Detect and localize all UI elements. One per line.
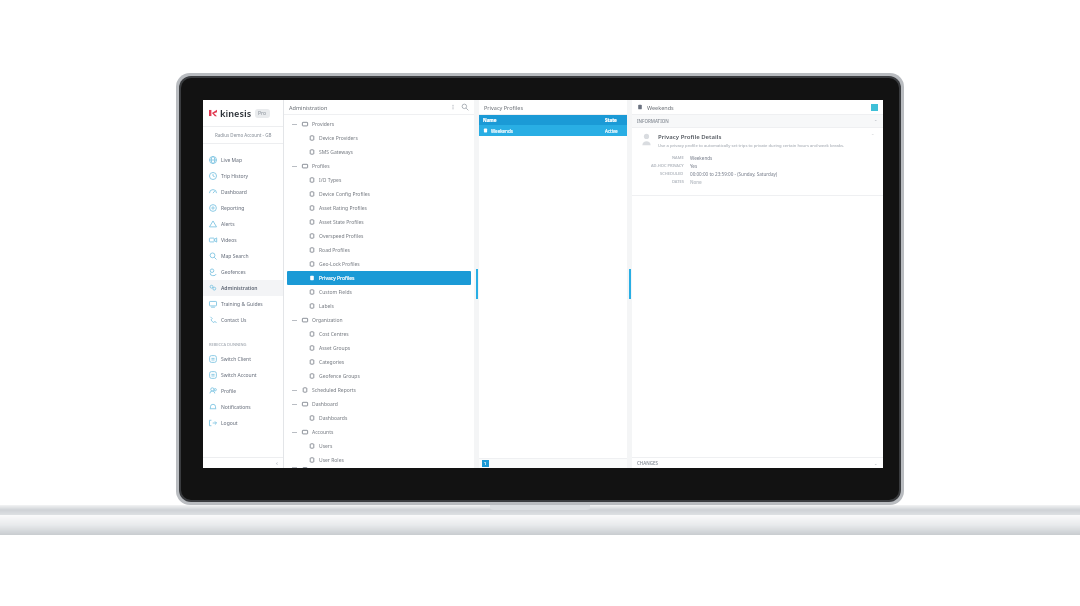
button[interactable]: Asset Groups xyxy=(287,341,471,355)
button[interactable]: Contact Us xyxy=(203,312,283,328)
button[interactable]: Trip History xyxy=(203,168,283,184)
button[interactable]: Switch Client xyxy=(203,351,283,367)
button[interactable]: Reporting xyxy=(203,200,283,216)
button[interactable]: Scheduled Reports xyxy=(287,383,471,397)
staticText: Dashboard xyxy=(312,401,338,408)
button[interactable]: Providers xyxy=(287,117,471,131)
button[interactable]: Dashboards xyxy=(287,411,471,425)
button[interactable]: SMS Gateways xyxy=(287,145,471,159)
staticText: Asset State Profiles xyxy=(319,219,364,226)
staticText: ⌃ xyxy=(871,133,875,138)
staticText: REBECCA DUNNING xyxy=(209,342,247,347)
staticText: kinesis xyxy=(220,107,252,119)
button[interactable]: Privacy Profiles xyxy=(287,271,471,285)
staticText: Asset Groups xyxy=(319,345,351,352)
button[interactable]: Map Search xyxy=(203,248,283,264)
staticText: None xyxy=(690,179,702,185)
staticText: Administration xyxy=(221,285,258,292)
button[interactable]: 1 xyxy=(482,460,489,467)
staticText: ⌃ xyxy=(874,119,878,124)
staticText: Training & Guides xyxy=(221,301,263,308)
staticText: Profiles xyxy=(312,163,330,170)
staticText: Labels xyxy=(319,303,335,310)
button[interactable]: I/O Types xyxy=(287,173,471,187)
staticText: Reporting xyxy=(221,205,245,212)
staticText: 00:00:00 to 23:59:00 - (Sunday, Saturday… xyxy=(690,171,778,177)
staticText: Road Profiles xyxy=(319,247,350,254)
staticText: Switch Account xyxy=(221,372,257,379)
button[interactable]: Geofence Groups xyxy=(287,369,471,383)
button[interactable]: Asset State Profiles xyxy=(287,215,471,229)
button[interactable]: Switch Account xyxy=(203,367,283,383)
staticText: Videos xyxy=(221,237,237,244)
staticText: Switch Client xyxy=(221,356,252,363)
staticText: Organization xyxy=(312,317,343,324)
staticText: SCHEDULED xyxy=(660,171,684,176)
button[interactable]: Training & Guides xyxy=(203,296,283,312)
button[interactable]: Geo-Lock Profiles xyxy=(287,257,471,271)
button[interactable]: Device Config Profiles xyxy=(287,187,471,201)
button[interactable]: Live Map xyxy=(203,152,283,168)
button[interactable]: Administration xyxy=(203,280,283,296)
staticText: Dashboard xyxy=(221,189,247,196)
button[interactable]: Users xyxy=(287,439,471,453)
staticText: Weekends xyxy=(690,155,713,161)
staticText: DATES xyxy=(672,179,684,184)
button[interactable]: User Roles xyxy=(287,453,471,467)
button[interactable]: Notifications xyxy=(203,399,283,415)
staticText: Contact Us xyxy=(221,317,247,324)
button[interactable]: Labels xyxy=(287,299,471,313)
button[interactable]: Dashboard xyxy=(203,184,283,200)
staticText: 1 xyxy=(484,461,487,466)
button[interactable]: Profiles xyxy=(287,159,471,173)
button[interactable]: Device Providers xyxy=(287,131,471,145)
button[interactable]: Categories xyxy=(287,355,471,369)
button[interactable]: Logout xyxy=(203,415,283,431)
staticText: Privacy Profiles xyxy=(484,104,524,111)
button[interactable]: Weekends xyxy=(479,125,627,136)
staticText: I/O Types xyxy=(319,177,342,184)
staticText: Administration xyxy=(289,104,328,111)
button[interactable]: Accounts xyxy=(287,425,471,439)
staticText: Users xyxy=(319,443,333,450)
button[interactable]: Search xyxy=(461,103,469,111)
button[interactable]: Organization xyxy=(287,313,471,327)
staticText: Weekends xyxy=(491,128,605,134)
staticText: Device Providers xyxy=(319,135,358,142)
button[interactable]: Asset Rating Profiles xyxy=(287,201,471,215)
staticText: INFORMATION xyxy=(637,118,669,124)
button[interactable]: Road Profiles xyxy=(287,243,471,257)
staticText: User Roles xyxy=(319,457,344,464)
staticText: Categories xyxy=(319,359,345,366)
button[interactable]: Dashboard xyxy=(287,397,471,411)
button[interactable]: Custom Fields xyxy=(287,285,471,299)
staticText: Logout xyxy=(221,420,238,427)
staticText: Radius Demo Account - GB xyxy=(215,132,272,138)
staticText: ‹ xyxy=(276,459,278,467)
button[interactable]: INFORMATION xyxy=(632,115,883,127)
staticText: Yes xyxy=(690,163,698,169)
button[interactable]: System Health xyxy=(287,467,471,468)
staticText: Accounts xyxy=(312,429,334,436)
staticText: Geo-Lock Profiles xyxy=(319,261,360,268)
button[interactable]: Profile xyxy=(203,383,283,399)
button[interactable]: More options xyxy=(449,103,457,111)
staticText: Weekends xyxy=(647,104,674,111)
button[interactable]: Alerts xyxy=(203,216,283,232)
staticText: AD-HOC PRIVACY xyxy=(651,163,684,168)
staticText: Geofences xyxy=(221,269,246,276)
staticText: Notifications xyxy=(221,404,251,411)
staticText: Geofence Groups xyxy=(319,373,360,380)
staticText: Active xyxy=(605,128,627,134)
staticText: Use a privacy profile to automatically s… xyxy=(658,143,845,149)
button[interactable]: Videos xyxy=(203,232,283,248)
staticText: Asset Rating Profiles xyxy=(319,205,367,212)
button[interactable]: Cost Centres xyxy=(287,327,471,341)
staticText: Live Map xyxy=(221,157,242,164)
button[interactable]: Overspeed Profiles xyxy=(287,229,471,243)
staticText: Profile xyxy=(221,388,237,395)
button[interactable]: Geofences xyxy=(203,264,283,280)
button[interactable]: CHANGES xyxy=(632,458,883,468)
